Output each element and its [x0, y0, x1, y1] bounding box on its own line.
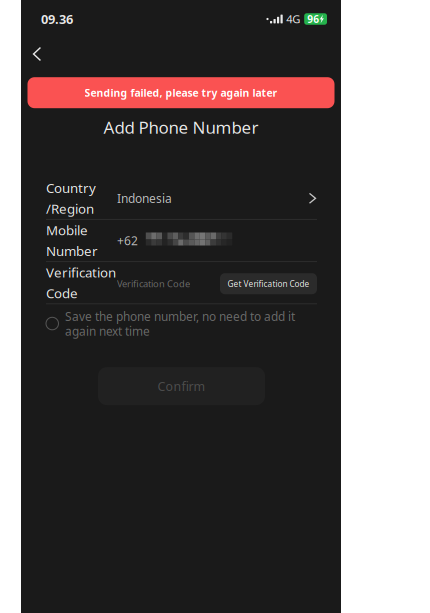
- staticText: Code: [46, 284, 78, 302]
- staticText: Number: [46, 242, 98, 260]
- button[interactable]: Country: [46, 178, 317, 219]
- staticText: Mobile: [46, 221, 88, 239]
- staticText: /Region: [46, 200, 94, 218]
- staticText: +62: [117, 232, 138, 249]
- staticText: Add Phone Number: [103, 116, 258, 139]
- staticText: Country: [46, 179, 96, 197]
- staticText: Sending failed, please try again later: [84, 86, 277, 100]
- button[interactable]: Confirm: [98, 367, 265, 405]
- staticText: 96: [307, 12, 319, 26]
- button[interactable]: Back: [24, 38, 50, 70]
- staticText: Confirm: [157, 378, 205, 395]
- staticText: Verification Code: [117, 277, 190, 290]
- staticText: 09.36: [41, 10, 73, 28]
- staticText: Save the phone number, no need to add it…: [65, 308, 295, 339]
- button[interactable]: Save the phone number, no need to add it…: [46, 304, 317, 339]
- staticText: Indonesia: [117, 190, 172, 206]
- staticText: 4G: [286, 11, 300, 27]
- button[interactable]: Get Verification Code: [220, 273, 317, 294]
- staticText: Verification: [46, 263, 116, 281]
- staticText: Get Verification Code: [227, 278, 309, 289]
